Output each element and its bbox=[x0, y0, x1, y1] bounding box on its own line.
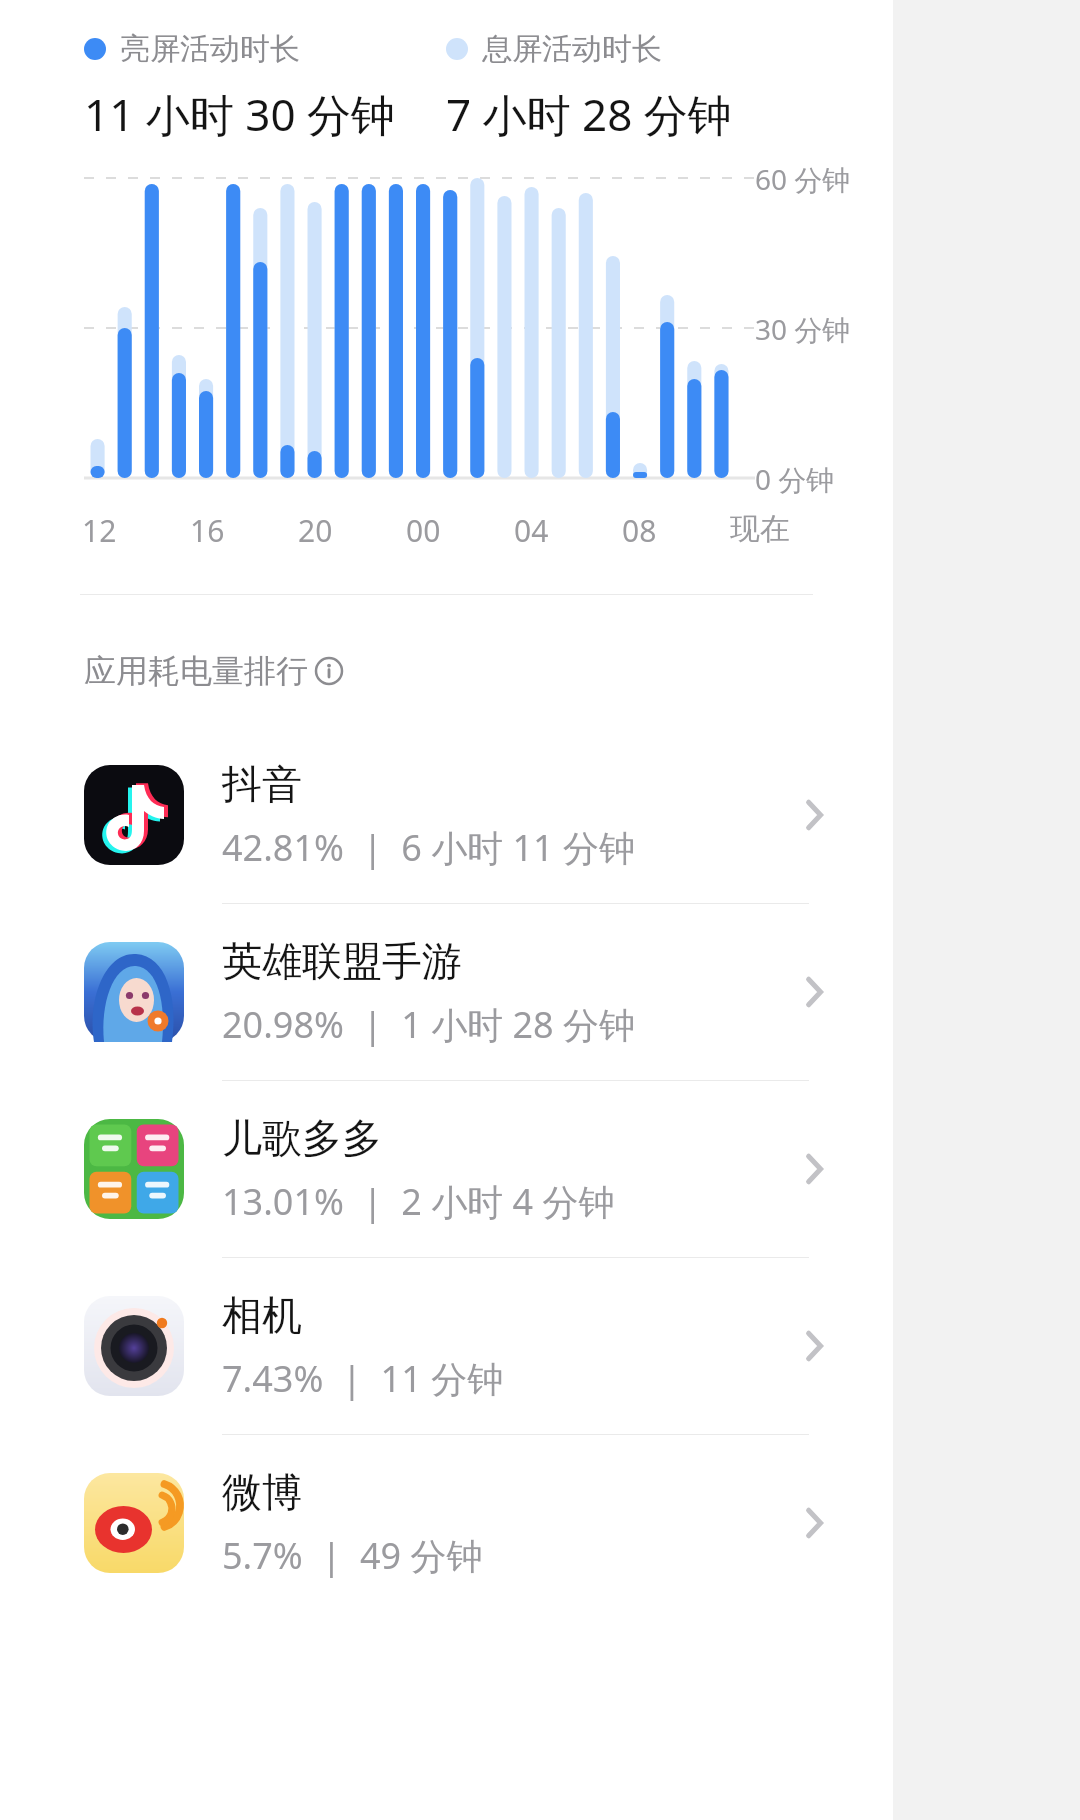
staticText: 60 分钟 bbox=[755, 160, 851, 198]
button[interactable]: 微博 bbox=[0, 1435, 893, 1611]
staticText: 30 分钟 bbox=[755, 310, 851, 348]
staticText: 亮屏活动时长 bbox=[120, 30, 300, 68]
staticText: 7.43% | 11 分钟 bbox=[222, 1354, 504, 1403]
staticText: 相机 bbox=[222, 1290, 302, 1340]
staticText: 20.98% | 1 小时 28 分钟 bbox=[222, 1000, 636, 1049]
button[interactable]: 抖音 bbox=[0, 727, 893, 904]
staticText: 13.01% | 2 小时 4 分钟 bbox=[222, 1177, 615, 1226]
staticText: 7 小时 28 分钟 bbox=[446, 84, 732, 144]
staticText: 11 小时 30 分钟 bbox=[84, 84, 395, 144]
button[interactable]: 英雄联盟手游 bbox=[0, 904, 893, 1081]
staticText: 42.81% | 6 小时 11 分钟 bbox=[222, 823, 636, 872]
staticText: 04 bbox=[514, 510, 549, 551]
staticText: 0 分钟 bbox=[755, 460, 835, 498]
button[interactable]: 儿歌多多 bbox=[0, 1081, 893, 1258]
staticText: 儿歌多多 bbox=[222, 1113, 382, 1163]
staticText: 现在 bbox=[730, 510, 790, 548]
staticText: 抖音 bbox=[222, 759, 302, 809]
staticText: 英雄联盟手游 bbox=[222, 936, 462, 986]
staticText: 20 bbox=[298, 510, 333, 551]
staticText: 微博 bbox=[222, 1467, 302, 1517]
staticText: 5.7% | 49 分钟 bbox=[222, 1531, 483, 1580]
staticText: 应用耗电量排行 bbox=[84, 651, 308, 691]
staticText: 08 bbox=[622, 510, 657, 551]
staticText: 16 bbox=[190, 510, 225, 551]
staticText: 00 bbox=[406, 510, 441, 551]
button[interactable]: 相机 bbox=[0, 1258, 893, 1435]
button[interactable]: Info bbox=[314, 656, 344, 686]
staticText: 息屏活动时长 bbox=[482, 30, 662, 68]
staticText: 12 bbox=[82, 510, 117, 551]
